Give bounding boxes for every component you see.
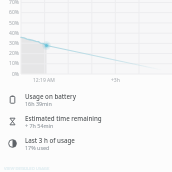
- staticText: 17% used: [25, 144, 50, 151]
- staticText: 20%: [9, 50, 19, 57]
- staticText: 40%: [9, 30, 19, 37]
- staticText: + 7h 54min: [25, 122, 54, 129]
- button[interactable]: Usage on battery: [0, 88, 172, 110]
- button[interactable]: Last 3 h of usage: [0, 132, 172, 154]
- staticText: 30%: [9, 40, 19, 47]
- staticText: VIEW DETAILED USAGE: [4, 166, 50, 172]
- staticText: 16h 39min: [25, 100, 52, 107]
- staticText: 60%: [9, 9, 19, 16]
- staticText: 12:19 AM: [33, 77, 55, 84]
- button[interactable]: VIEW DETAILED USAGE: [0, 163, 172, 172]
- staticText: Usage on battery: [25, 92, 76, 100]
- staticText: 10%: [9, 60, 19, 67]
- staticText: 70%: [9, 0, 19, 6]
- staticText: Estimated time remaining: [25, 114, 102, 122]
- staticText: +3h: [111, 77, 120, 84]
- staticText: Last 3 h of usage: [25, 136, 75, 144]
- staticText: 0%: [11, 71, 19, 78]
- button[interactable]: Estimated time remaining: [0, 110, 172, 132]
- staticText: 50%: [9, 20, 19, 27]
